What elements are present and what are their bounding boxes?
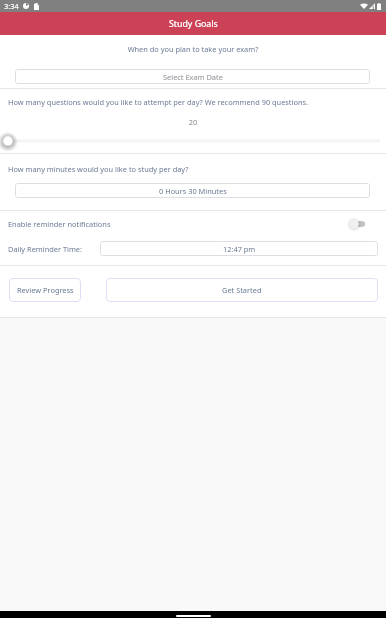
button[interactable]: Select Exam Date	[15, 69, 370, 84]
staticText: How many minutes would you like to study…	[8, 164, 189, 174]
staticText: Daily Reminder Time:	[8, 244, 82, 254]
staticText: Get Started	[222, 285, 262, 295]
button[interactable]: Get Started	[106, 278, 378, 302]
button[interactable]: Questions per day slider	[0, 131, 386, 151]
staticText: Enable reminder notifications	[8, 219, 111, 229]
staticText: 3:34	[4, 1, 19, 11]
staticText: Select Exam Date	[163, 72, 223, 82]
button[interactable]: 12:47 pm	[100, 241, 378, 256]
button[interactable]: Review Progress	[9, 278, 81, 302]
button[interactable]: 0 Hours 30 Minutes	[15, 183, 370, 198]
staticText: 0 Hours 30 Minutes	[159, 186, 227, 196]
staticText: 20	[0, 117, 386, 127]
staticText: Review Progress	[17, 285, 74, 295]
button[interactable]: Enable reminder notifications toggle	[349, 218, 365, 230]
staticText: Study Goals	[169, 18, 218, 30]
staticText: When do you plan to take your exam?	[0, 44, 386, 54]
staticText: How many questions would you like to att…	[8, 97, 308, 107]
staticText: 12:47 pm	[223, 244, 256, 254]
